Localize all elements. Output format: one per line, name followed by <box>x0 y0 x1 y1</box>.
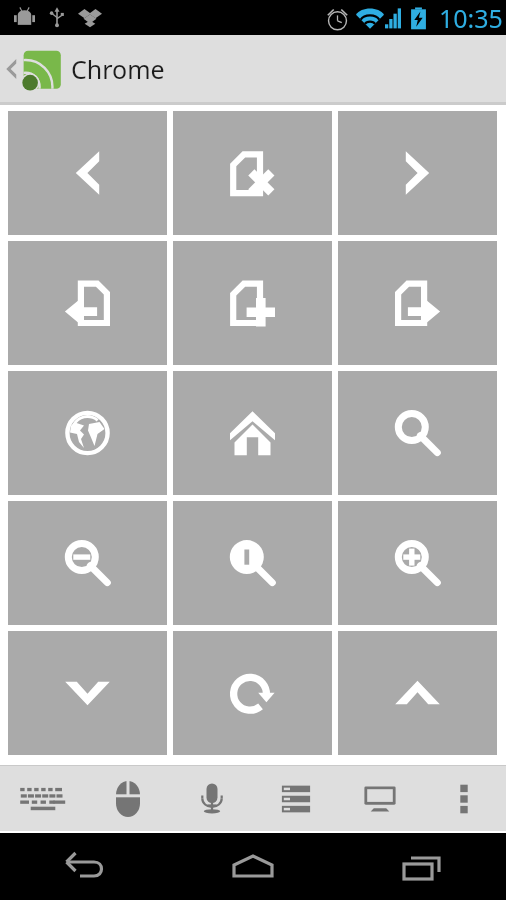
button[interactable]: Zoom out <box>8 501 167 625</box>
button[interactable]: New tab <box>173 241 332 365</box>
button[interactable]: Back <box>0 833 168 900</box>
staticText: 10:35 <box>439 1 503 35</box>
button[interactable]: Search <box>338 371 497 495</box>
button[interactable]: Chrome <box>0 35 506 102</box>
button[interactable]: Forward <box>338 111 497 235</box>
button[interactable]: Actual size <box>173 501 332 625</box>
button[interactable]: Recent apps <box>337 833 506 900</box>
button[interactable]: Voice input <box>170 766 254 831</box>
button[interactable]: Menu <box>254 766 338 831</box>
button[interactable]: Keyboard <box>0 766 85 831</box>
button[interactable]: More options <box>422 766 506 831</box>
button[interactable]: Page down <box>8 631 167 755</box>
button[interactable]: Page up <box>338 631 497 755</box>
button[interactable]: Next tab <box>338 241 497 365</box>
button[interactable]: Home <box>173 371 332 495</box>
button[interactable]: Stop loading <box>173 111 332 235</box>
button[interactable]: Globe <box>8 371 167 495</box>
button[interactable]: Reload <box>173 631 332 755</box>
button[interactable]: Zoom in <box>338 501 497 625</box>
button[interactable]: Back <box>8 111 167 235</box>
button[interactable]: Touchpad <box>85 766 170 831</box>
button[interactable]: Previous tab <box>8 241 167 365</box>
button[interactable]: Display <box>338 766 422 831</box>
staticText: Chrome <box>71 52 165 86</box>
button[interactable]: Home <box>168 833 337 900</box>
